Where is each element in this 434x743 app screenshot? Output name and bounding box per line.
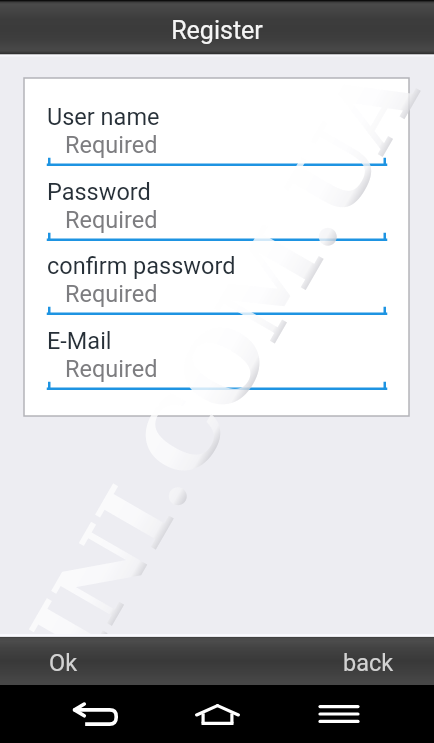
staticText: Required	[65, 355, 158, 383]
button[interactable]: Password	[24, 153, 409, 228]
staticText: Password	[47, 178, 151, 206]
staticText: Register	[171, 16, 263, 45]
staticText: Required	[65, 131, 158, 159]
button[interactable]: User name	[24, 78, 409, 153]
button[interactable]: E-Mail	[24, 302, 409, 377]
button[interactable]: Menu	[309, 685, 369, 743]
staticText: Required	[65, 280, 158, 308]
staticText: confirm password	[47, 252, 236, 280]
staticText: back	[343, 649, 394, 677]
button[interactable]: Home	[187, 685, 247, 743]
staticText: Ok	[49, 649, 78, 677]
staticText: Required	[65, 206, 158, 234]
staticText: User name	[47, 103, 160, 131]
staticText: MINI.COM.UA	[0, 46, 434, 743]
staticText: E-Mail	[47, 327, 112, 355]
button[interactable]: confirm password	[24, 227, 409, 302]
button[interactable]: back	[304, 637, 434, 685]
button[interactable]: Back	[65, 685, 125, 743]
button[interactable]: Ok	[0, 637, 130, 685]
